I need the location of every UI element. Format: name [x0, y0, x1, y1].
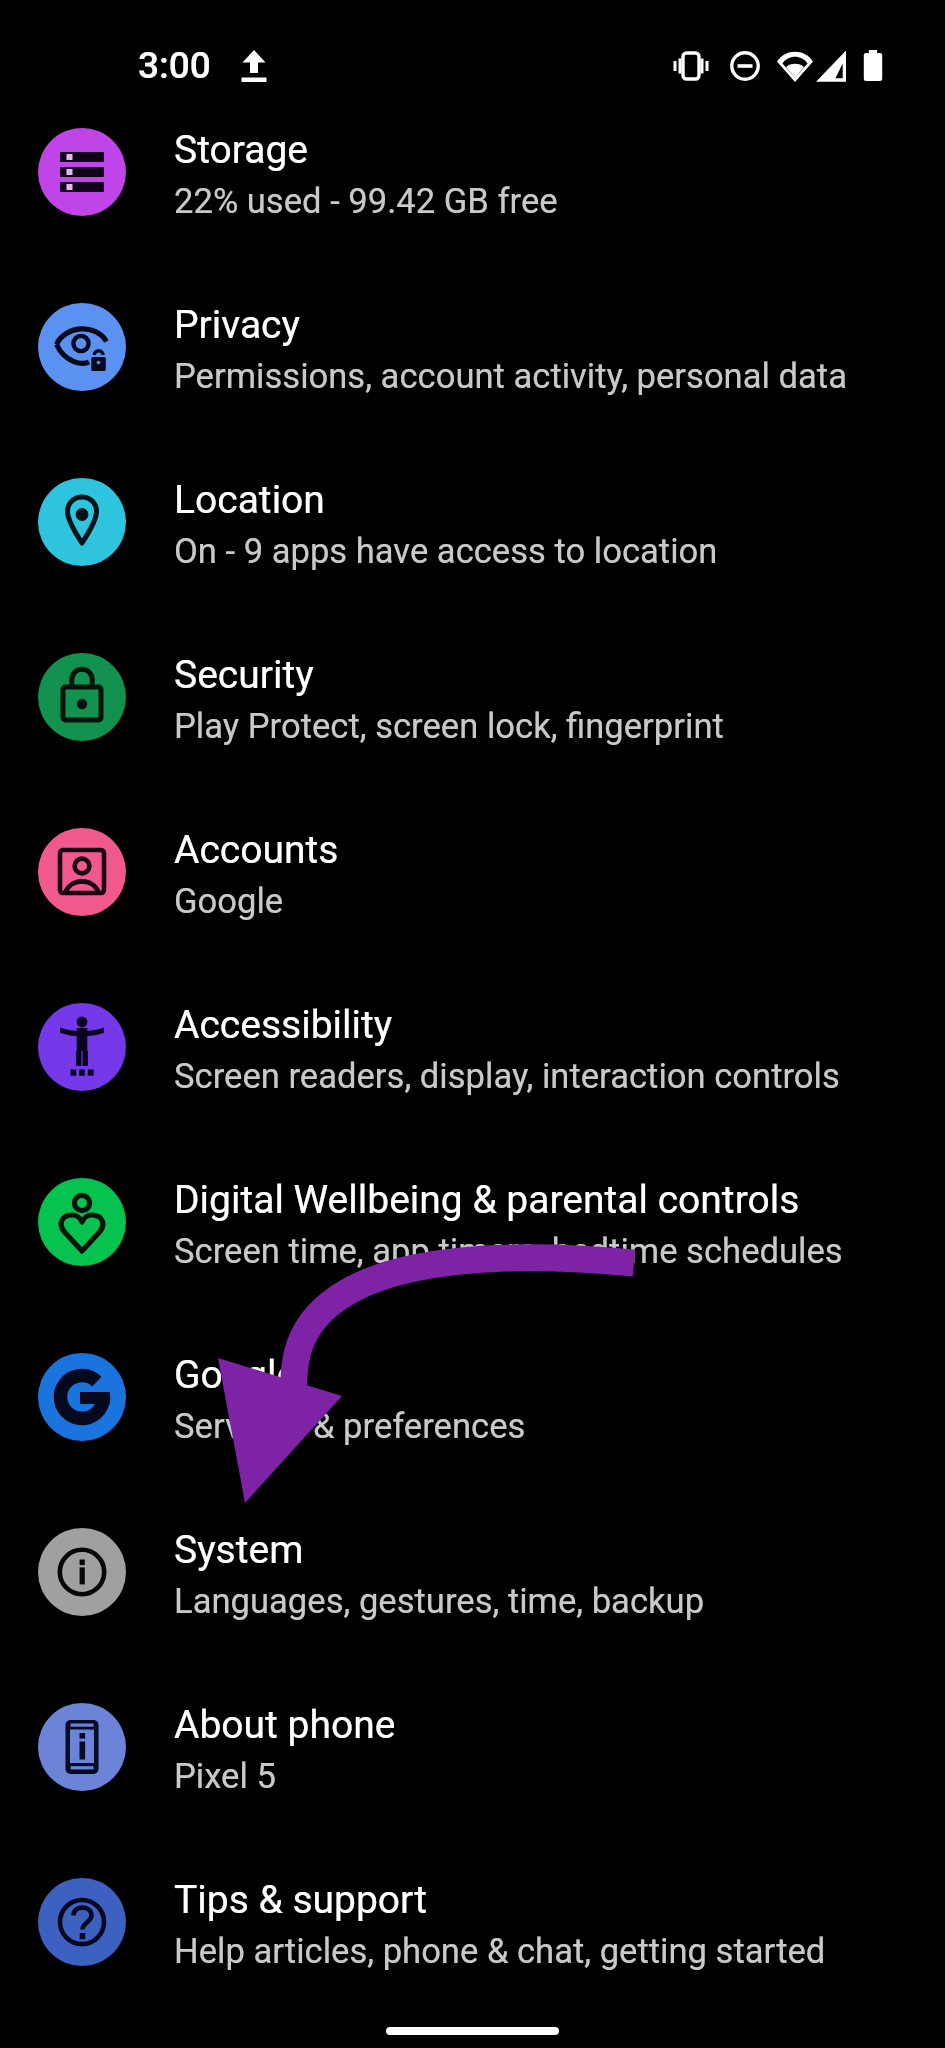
button[interactable]: Security	[0, 609, 945, 784]
staticText: Permissions, account activity, personal …	[174, 356, 847, 397]
button[interactable]: Location	[0, 434, 945, 609]
button[interactable]: Google	[0, 1309, 945, 1484]
button[interactable]: Tips & support	[0, 1834, 945, 2009]
staticText: Screen readers, display, interaction con…	[174, 1056, 840, 1097]
staticText: About phone	[174, 1702, 396, 1748]
staticText: Accounts	[174, 827, 339, 873]
staticText: Google	[174, 881, 284, 922]
staticText: Play Protect, screen lock, fingerprint	[174, 706, 724, 747]
staticText: Security	[174, 652, 314, 698]
staticText: Digital Wellbeing & parental controls	[174, 1177, 800, 1223]
staticText: Languages, gestures, time, backup	[174, 1581, 705, 1622]
button[interactable]: Accounts	[0, 784, 945, 959]
button[interactable]: About phone	[0, 1659, 945, 1834]
button[interactable]: System	[0, 1484, 945, 1659]
button[interactable]: Privacy	[0, 259, 945, 434]
staticText: Help articles, phone & chat, getting sta…	[174, 1931, 826, 1972]
staticText: 3:00	[138, 44, 211, 87]
staticText: Accessibility	[174, 1002, 393, 1048]
staticText: Services & preferences	[174, 1406, 526, 1447]
staticText: Pixel 5	[174, 1756, 276, 1797]
staticText: Google	[174, 1352, 298, 1398]
staticText: 22% used - 99.42 GB free	[174, 181, 558, 222]
staticText: Tips & support	[174, 1877, 427, 1923]
staticText: System	[174, 1527, 304, 1573]
staticText: Privacy	[174, 302, 300, 348]
other: Status bar	[0, 0, 945, 84]
button[interactable]: Accessibility	[0, 959, 945, 1134]
staticText: Storage	[174, 127, 309, 173]
staticText: Screen time, app timers, bedtime schedul…	[174, 1231, 843, 1272]
staticText: Location	[174, 477, 325, 523]
staticText: On - 9 apps have access to location	[174, 531, 718, 572]
button[interactable]: Digital Wellbeing & parental controls	[0, 1134, 945, 1309]
button[interactable]: Storage	[0, 84, 945, 259]
